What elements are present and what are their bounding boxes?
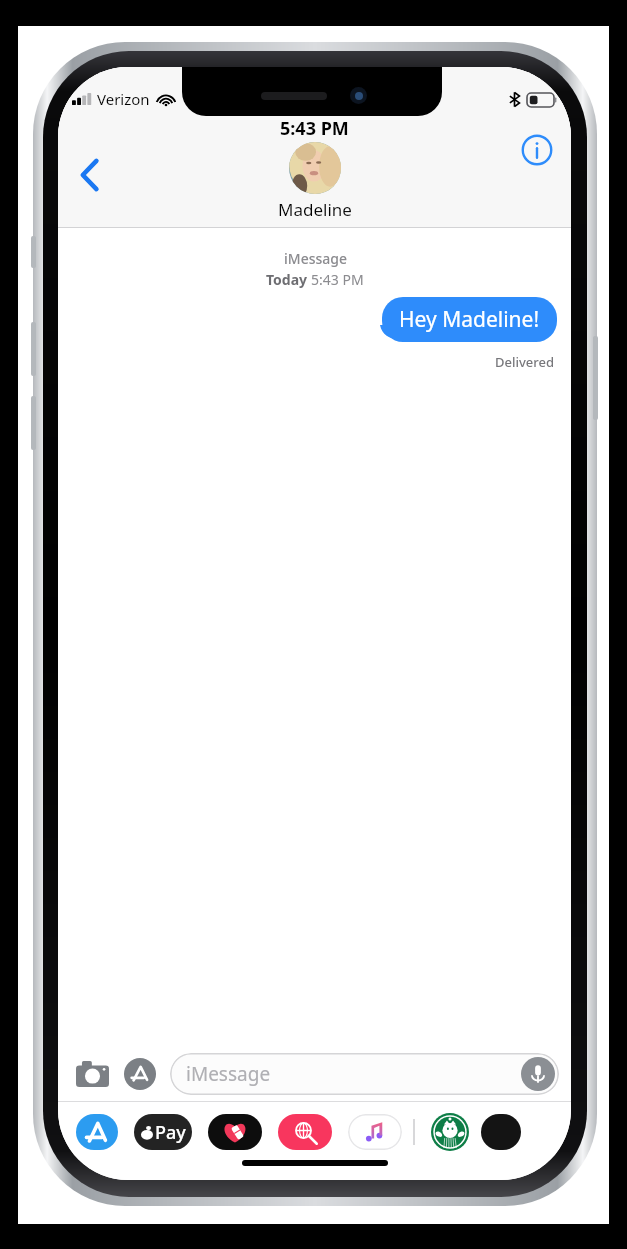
staticText: Today xyxy=(266,270,311,289)
button[interactable]: Starbucks xyxy=(427,1112,473,1152)
button[interactable]: Apple Pay xyxy=(133,1112,193,1152)
staticText: iMessage xyxy=(186,1061,271,1087)
button[interactable]: Back xyxy=(64,149,116,201)
button[interactable]: Camera xyxy=(70,1052,114,1096)
button[interactable]: More apps xyxy=(481,1114,521,1150)
staticText: Madeline xyxy=(278,198,352,221)
button[interactable]: Details xyxy=(511,124,563,176)
staticText: 5:43 PM xyxy=(311,270,364,289)
button[interactable]: Apps xyxy=(118,1052,162,1096)
button[interactable]: iMessage xyxy=(170,1053,559,1095)
staticText: Hey Madeline! xyxy=(399,305,540,334)
staticText: Pay xyxy=(155,1120,186,1145)
button[interactable]: Hey Madeline! xyxy=(382,297,557,342)
staticText: Delivered xyxy=(495,353,555,371)
button[interactable]: Madeline xyxy=(268,142,362,221)
staticText: 5:43 PM xyxy=(280,116,349,141)
button[interactable]: App Store xyxy=(74,1112,119,1152)
button[interactable]: Dictate xyxy=(521,1057,555,1091)
staticText: Verizon xyxy=(97,89,150,109)
button[interactable]: Image search xyxy=(277,1112,333,1152)
staticText: iMessage xyxy=(284,249,347,268)
button[interactable]: Stickers xyxy=(207,1112,263,1152)
button[interactable]: Music xyxy=(347,1112,403,1152)
